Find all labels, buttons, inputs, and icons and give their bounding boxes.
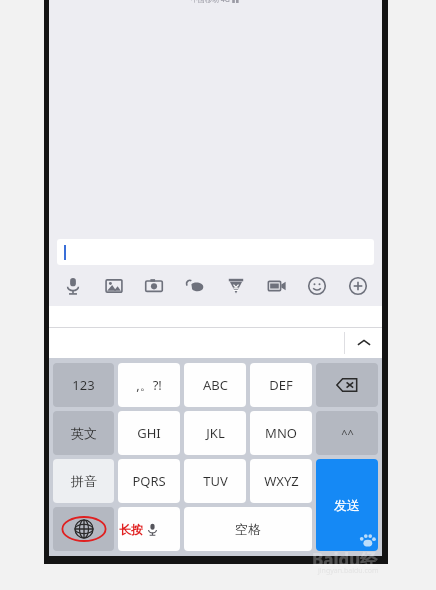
button[interactable]: GHI [118, 411, 180, 455]
button[interactable]: JKL [184, 411, 246, 455]
staticText: 拼音 [71, 473, 97, 489]
button[interactable] [57, 239, 374, 265]
staticText: DEF [269, 376, 293, 394]
staticText: TUV [203, 472, 228, 490]
button[interactable]: PQRS [118, 459, 180, 503]
button[interactable]: 英文 [53, 411, 114, 455]
staticText: 长按 [119, 522, 143, 537]
staticText: WXYZ [264, 472, 299, 490]
button[interactable]: Emoji [303, 272, 331, 300]
button[interactable]: 空格 [184, 507, 312, 551]
button[interactable]: Collapse keyboard [345, 328, 382, 358]
button[interactable]: ,。?! [118, 363, 180, 407]
staticText: jingyan.baidu.com [318, 566, 379, 576]
button[interactable]: 拼音 [53, 459, 114, 503]
button[interactable]: More [344, 272, 372, 300]
button[interactable]: 发送 [316, 459, 378, 551]
staticText: GHI [137, 424, 161, 442]
staticText: JKL [206, 424, 225, 442]
button[interactable]: WXYZ [250, 459, 312, 503]
staticText: Baidu经 [312, 548, 378, 571]
button[interactable]: GIF [263, 272, 291, 300]
staticText: ,。?! [136, 376, 162, 394]
button[interactable]: Backspace [316, 363, 378, 407]
staticText: 123 [72, 376, 95, 394]
staticText: ABC [203, 376, 228, 394]
button[interactable]: Switch input method [53, 507, 114, 551]
button[interactable]: Voice input [118, 507, 180, 551]
button[interactable]: Photo [100, 272, 128, 300]
button[interactable]: ABC [184, 363, 246, 407]
button[interactable]: MNO [250, 411, 312, 455]
button[interactable]: ^^ [316, 411, 378, 455]
button[interactable]: 123 [53, 363, 114, 407]
button[interactable]: Voice message [59, 272, 87, 300]
staticText: MNO [265, 424, 297, 442]
staticText: 中国移动 4G ▮▮ [191, 0, 240, 5]
button[interactable]: Poke [181, 272, 209, 300]
staticText: 发送 [334, 497, 360, 513]
button[interactable]: Camera [140, 272, 168, 300]
staticText: PQRS [132, 472, 166, 490]
button[interactable]: TUV [184, 459, 246, 503]
staticText: ^^ [341, 426, 354, 441]
staticText: 英文 [71, 425, 97, 441]
button[interactable]: Red packet [222, 272, 250, 300]
button[interactable]: DEF [250, 363, 312, 407]
staticText: 空格 [235, 521, 261, 537]
